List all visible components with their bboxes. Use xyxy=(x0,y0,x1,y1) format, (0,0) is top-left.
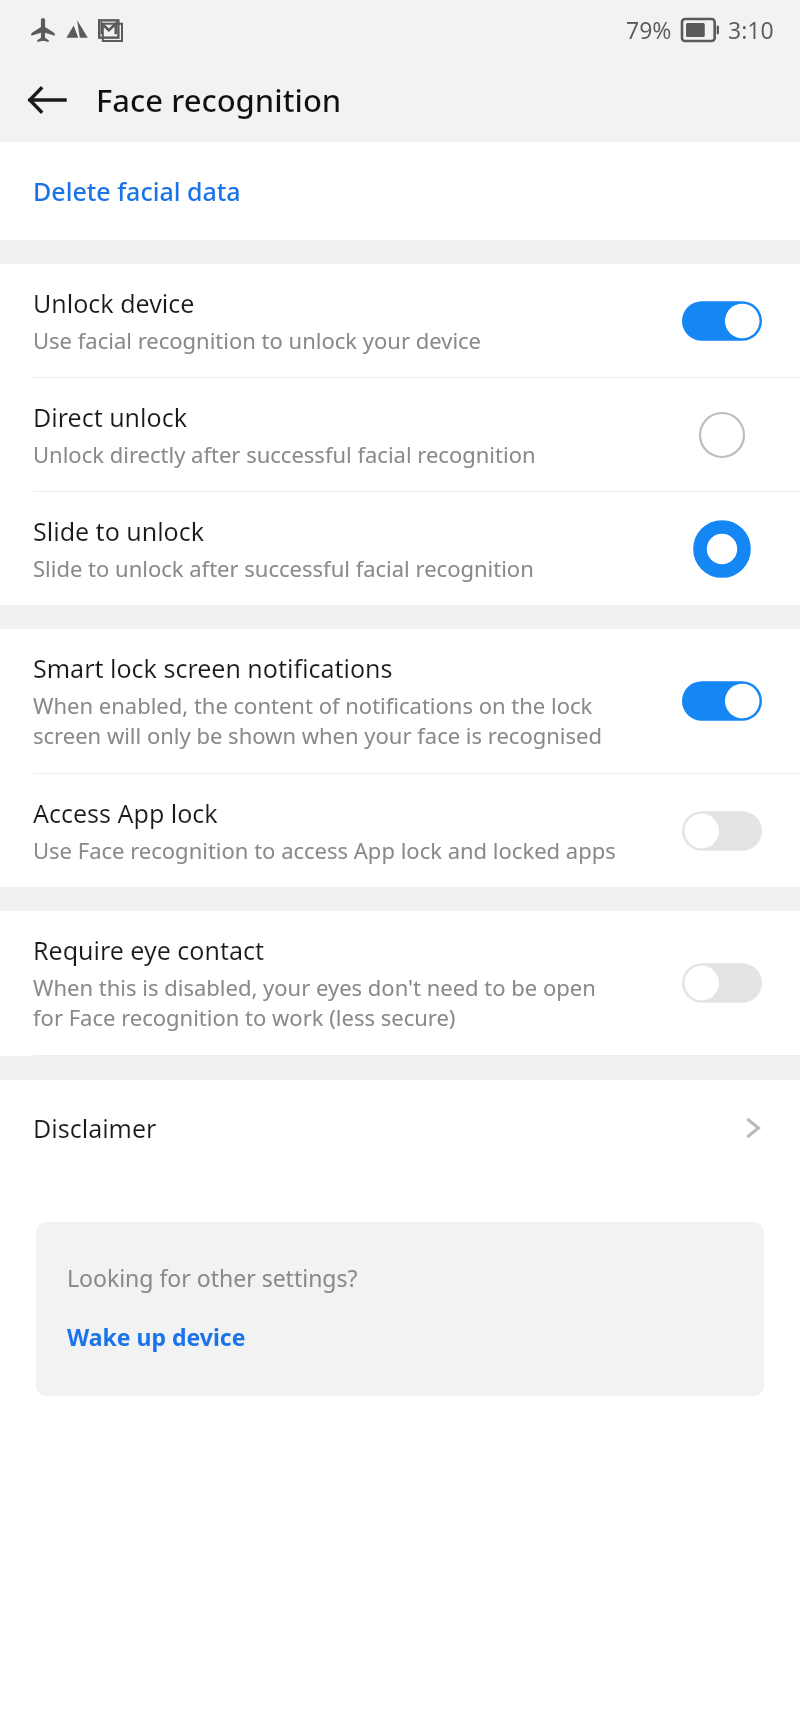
staticText: Delete facial data xyxy=(33,174,241,208)
button[interactable]: Looking for other settings? xyxy=(36,1222,764,1396)
button[interactable]: Toggle off xyxy=(682,959,762,1007)
staticText: Slide to unlock xyxy=(33,514,205,548)
button[interactable]: Toggle on xyxy=(682,677,762,725)
button[interactable]: Toggle on xyxy=(682,297,762,345)
staticText: Use facial recognition to unlock your de… xyxy=(33,325,482,355)
staticText: Smart lock screen notifications xyxy=(33,651,393,685)
staticText: Direct unlock xyxy=(33,400,187,434)
staticText: 79% xyxy=(626,14,672,45)
staticText: When enabled, the content of notificatio… xyxy=(33,690,629,751)
button[interactable]: Unselected option xyxy=(693,406,751,464)
staticText: Looking for other settings? xyxy=(67,1262,358,1293)
staticText: 3:10 xyxy=(728,14,774,45)
staticText: Unlock device xyxy=(33,286,195,320)
staticText: Use Face recognition to access App lock … xyxy=(33,835,616,865)
button[interactable]: Back xyxy=(18,71,76,129)
button[interactable]: Selected option xyxy=(693,520,751,578)
staticText: Unlock directly after successful facial … xyxy=(33,439,536,469)
staticText: When this is disabled, your eyes don't n… xyxy=(33,972,629,1033)
button[interactable]: Delete facial data xyxy=(0,142,800,240)
staticText: Disclaimer xyxy=(33,1111,736,1145)
staticText: Access App lock xyxy=(33,796,218,830)
staticText: Wake up device xyxy=(67,1321,246,1352)
staticText: Slide to unlock after successful facial … xyxy=(33,553,534,583)
staticText: Face recognition xyxy=(96,79,342,121)
button[interactable]: Smart lock screen notifications xyxy=(0,629,800,773)
staticText: Require eye contact xyxy=(33,933,264,967)
button[interactable]: Disclaimer xyxy=(0,1080,800,1176)
button[interactable]: Unlock device xyxy=(0,264,800,377)
button[interactable]: Direct unlock xyxy=(0,378,800,491)
button[interactable]: Slide to unlock xyxy=(0,492,800,605)
button[interactable]: Require eye contact xyxy=(0,911,800,1055)
button[interactable]: Toggle off xyxy=(682,807,762,855)
button[interactable]: Access App lock xyxy=(0,774,800,887)
